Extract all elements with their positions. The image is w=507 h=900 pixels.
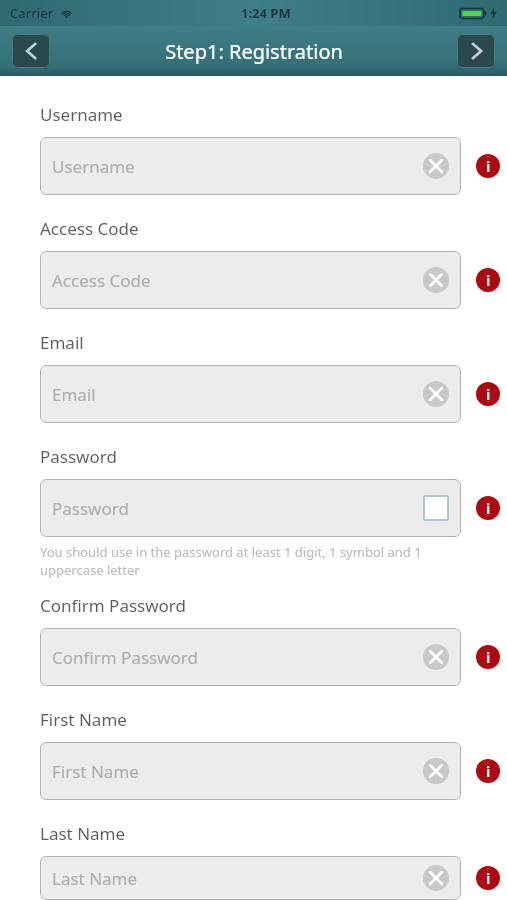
staticText: Access Code (40, 217, 139, 240)
button[interactable]: Information (476, 496, 500, 520)
staticText: First Name (52, 760, 423, 783)
staticText: Username (40, 103, 123, 126)
staticText: You should use in the password at least … (40, 543, 462, 579)
staticText: Confirm Password (52, 646, 423, 669)
button[interactable]: Email (40, 365, 461, 423)
staticText: Last Name (40, 822, 126, 845)
button[interactable]: Information (476, 382, 500, 406)
button[interactable]: Last Name (40, 856, 461, 900)
staticText: Username (52, 155, 423, 178)
button[interactable]: Password (40, 479, 461, 537)
button[interactable]: Username (40, 137, 461, 195)
staticText: Carrier (10, 4, 54, 22)
button[interactable]: Information (476, 759, 500, 783)
button[interactable]: Information (476, 645, 500, 669)
staticText: Email (40, 331, 84, 354)
button[interactable]: Clear text (423, 865, 449, 891)
button[interactable]: Show password (423, 495, 449, 521)
button[interactable]: Information (476, 866, 500, 890)
staticText: Last Name (52, 867, 423, 890)
button[interactable]: Information (476, 268, 500, 292)
staticText: Password (52, 497, 423, 520)
button[interactable]: Clear text (423, 644, 449, 670)
staticText: First Name (40, 708, 127, 731)
staticText: i (486, 499, 491, 518)
staticText: i (486, 869, 491, 888)
button[interactable]: Clear text (423, 267, 449, 293)
button[interactable]: Clear text (423, 381, 449, 407)
staticText: i (486, 271, 491, 290)
staticText: i (486, 762, 491, 781)
button[interactable]: Access Code (40, 251, 461, 309)
staticText: Confirm Password (40, 594, 186, 617)
button[interactable]: Next (457, 34, 495, 68)
button[interactable]: Back (12, 34, 50, 68)
button[interactable]: Clear text (423, 758, 449, 784)
button[interactable]: Information (476, 154, 500, 178)
staticText: Password (40, 445, 117, 468)
staticText: Email (52, 383, 423, 406)
staticText: i (486, 648, 491, 667)
staticText: i (486, 157, 491, 176)
staticText: Step1: Registration (165, 38, 343, 65)
staticText: Access Code (52, 269, 423, 292)
staticText: 1:24 PM (241, 4, 291, 22)
button[interactable]: First Name (40, 742, 461, 800)
staticText: i (486, 385, 491, 404)
button[interactable]: Confirm Password (40, 628, 461, 686)
button[interactable]: Clear text (423, 153, 449, 179)
